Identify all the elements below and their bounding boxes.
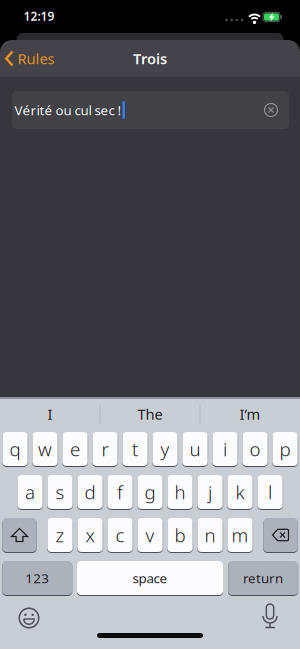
staticText: g [144,480,155,504]
staticText: i [223,437,227,461]
staticText: z [55,523,64,547]
button[interactable]: Dictation [250,597,290,637]
button[interactable]: p [272,432,298,466]
staticText: b [174,523,185,547]
staticText: q [9,437,20,461]
staticText: d [84,480,95,504]
button[interactable]: Clear text [261,91,281,129]
button[interactable]: The [102,399,198,429]
staticText: o [249,437,260,461]
button[interactable]: k [227,475,253,509]
staticText: return [243,569,283,587]
button[interactable]: u [182,432,208,466]
button[interactable]: a [17,475,43,509]
staticText: j [208,480,212,504]
staticText: 123 [25,569,49,587]
button[interactable]: n [197,518,223,552]
button[interactable]: f [107,475,133,509]
staticText: x [85,523,94,547]
staticText: f [117,480,123,504]
button[interactable]: l [257,475,283,509]
staticText: l [268,480,272,504]
button[interactable]: v [137,518,163,552]
staticText: w [38,437,52,461]
staticText: k [235,480,244,504]
staticText: Vérité ou cul sec ! [14,101,121,119]
staticText: y [160,437,169,461]
button[interactable]: j [197,475,223,509]
button[interactable]: q [2,432,28,466]
staticText: 12:19 [23,8,54,24]
button[interactable]: Rules [5,40,54,77]
button[interactable]: m [227,518,253,552]
staticText: s [55,480,64,504]
button[interactable]: Emoji [9,598,49,638]
button[interactable]: w [32,432,58,466]
button[interactable]: Text field: Vérité ou cul sec ! [12,91,289,129]
staticText: r [101,437,108,461]
staticText: space [132,569,167,587]
button[interactable]: return [228,561,298,595]
button[interactable]: y [152,432,178,466]
staticText: p [279,437,290,461]
button[interactable]: r [92,432,118,466]
button[interactable]: g [137,475,163,509]
staticText: u [189,437,200,461]
button[interactable]: i [212,432,238,466]
button[interactable]: z [47,518,73,552]
button[interactable]: I [2,399,98,429]
staticText: m [231,523,248,547]
staticText: c [115,523,124,547]
button[interactable]: 123 [2,561,72,595]
button[interactable]: h [167,475,193,509]
button[interactable]: t [122,432,148,466]
button[interactable]: c [107,518,133,552]
staticText: v [145,523,154,547]
button[interactable]: space [77,561,223,595]
button[interactable]: d [77,475,103,509]
staticText: a [25,480,35,504]
staticText: Trois [133,49,167,68]
staticText: I [47,404,52,424]
button[interactable]: s [47,475,73,509]
button[interactable]: Delete [263,518,297,552]
staticText: I’m [239,404,260,424]
staticText: The [137,404,162,424]
staticText: t [132,437,138,461]
staticText: e [70,437,80,461]
button[interactable]: I’m [202,399,298,429]
staticText: h [174,480,185,504]
staticText: Rules [17,49,54,68]
button[interactable]: b [167,518,193,552]
button[interactable]: o [242,432,268,466]
button[interactable]: Shift [2,518,36,552]
button[interactable]: x [77,518,103,552]
button[interactable]: e [62,432,88,466]
staticText: n [204,523,215,547]
